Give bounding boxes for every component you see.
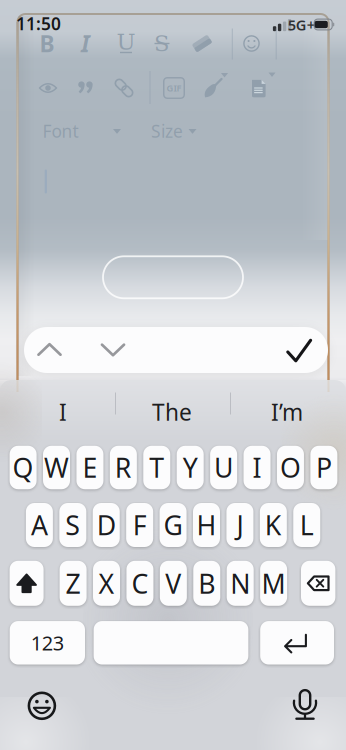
staticText: GIF — [166, 82, 181, 94]
button[interactable] — [27, 691, 57, 721]
button[interactable] — [286, 338, 312, 362]
button[interactable]: M — [260, 561, 287, 606]
button[interactable]: X — [93, 561, 120, 606]
button[interactable]: Z — [60, 561, 87, 606]
button[interactable]: S — [147, 28, 177, 58]
staticText: U — [116, 29, 135, 55]
button[interactable]: Q — [10, 446, 37, 489]
button[interactable]: G — [160, 503, 187, 547]
button[interactable]: 123 — [10, 621, 85, 664]
button[interactable] — [301, 561, 335, 606]
button[interactable]: O — [277, 446, 304, 489]
staticText: Q — [13, 450, 34, 485]
button[interactable]: I’m — [235, 394, 339, 430]
staticText: K — [265, 507, 282, 543]
staticText: X — [98, 566, 114, 601]
staticText: Y — [183, 450, 198, 485]
staticText: 5G+ — [288, 15, 315, 35]
button[interactable]: T — [143, 446, 170, 489]
staticText: U — [214, 450, 233, 485]
staticText: Z — [66, 566, 81, 601]
staticText: S — [65, 507, 80, 543]
staticText: T — [149, 450, 164, 485]
button[interactable]: P — [310, 446, 337, 489]
button[interactable] — [111, 75, 137, 101]
button[interactable]: Y — [177, 446, 204, 489]
staticText: R — [115, 450, 132, 485]
button[interactable]: K — [260, 503, 287, 547]
staticText: Size — [151, 119, 183, 142]
staticText: N — [230, 566, 250, 601]
button[interactable] — [236, 28, 266, 58]
button[interactable]: The — [120, 394, 224, 430]
staticText: E — [82, 450, 97, 485]
button[interactable]: J — [226, 503, 253, 547]
button[interactable]: L — [293, 503, 320, 547]
staticText: The — [152, 397, 192, 427]
staticText: G — [164, 507, 183, 543]
button[interactable]: C — [126, 561, 153, 606]
button[interactable] — [100, 343, 125, 357]
staticText: J — [236, 507, 243, 543]
staticText: P — [316, 450, 332, 485]
staticText: C — [131, 566, 148, 601]
button[interactable]: N — [227, 561, 254, 606]
staticText: A — [31, 507, 48, 543]
button[interactable] — [201, 76, 225, 100]
staticText: I’m — [271, 397, 303, 427]
staticText: S — [154, 30, 170, 57]
button[interactable]: H — [193, 503, 220, 547]
staticText: I — [252, 450, 261, 485]
staticText: W — [44, 450, 69, 485]
staticText: O — [280, 450, 301, 485]
staticText: M — [262, 566, 286, 601]
button[interactable]: A — [26, 503, 53, 547]
staticText: F — [133, 507, 147, 543]
button[interactable]: Font — [40, 119, 80, 143]
button[interactable] — [75, 77, 97, 99]
button[interactable]: F — [126, 503, 153, 547]
staticText: H — [196, 507, 216, 543]
staticText: 123 — [31, 629, 64, 656]
button[interactable]: U — [210, 446, 237, 489]
button[interactable]: B — [32, 28, 62, 58]
button[interactable] — [37, 343, 62, 357]
button[interactable] — [260, 621, 334, 664]
button[interactable]: Size — [149, 119, 185, 143]
staticText: I — [59, 397, 67, 427]
button[interactable]: W — [43, 446, 70, 489]
staticText: L — [300, 507, 314, 543]
staticText: 11:50 — [16, 12, 61, 35]
staticText: B — [39, 28, 54, 59]
button[interactable]: I — [11, 394, 115, 430]
staticText: I — [81, 28, 90, 59]
button[interactable]: E — [76, 446, 103, 489]
button[interactable] — [94, 621, 248, 664]
staticText: D — [97, 507, 116, 543]
staticText: B — [198, 566, 215, 601]
button[interactable]: GIF — [162, 76, 186, 100]
button[interactable]: D — [93, 503, 120, 547]
button[interactable]: I — [243, 446, 270, 489]
button[interactable] — [10, 561, 44, 606]
staticText: Font — [42, 119, 78, 142]
button[interactable] — [187, 28, 217, 58]
button[interactable] — [250, 77, 268, 99]
button[interactable]: V — [160, 561, 187, 606]
staticText: V — [165, 566, 181, 601]
button[interactable]: I — [70, 28, 100, 58]
button[interactable]: R — [110, 446, 137, 489]
button[interactable] — [292, 689, 318, 720]
button[interactable]: S — [59, 503, 86, 547]
button[interactable]: B — [193, 561, 220, 606]
button[interactable] — [33, 75, 63, 101]
button[interactable]: U — [111, 28, 141, 58]
